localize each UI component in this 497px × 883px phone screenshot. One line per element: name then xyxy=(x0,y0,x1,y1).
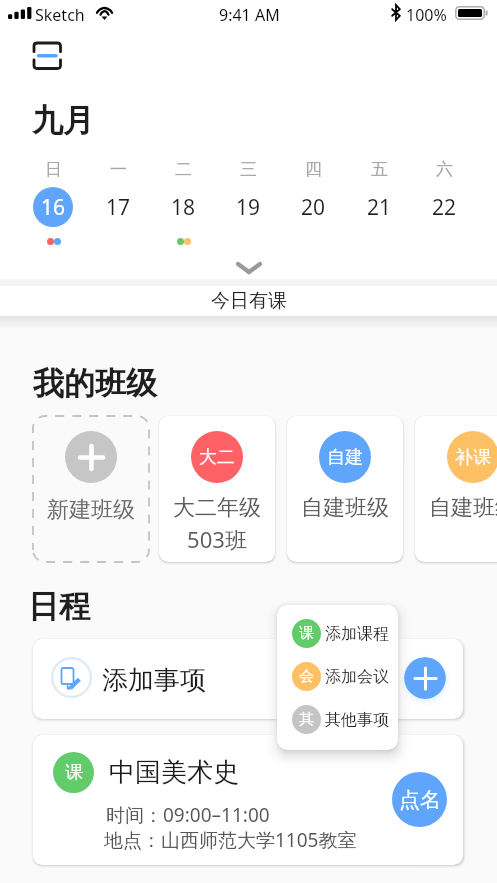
button[interactable]: 大二 xyxy=(159,416,275,562)
button[interactable]: 课 xyxy=(33,735,463,865)
staticText: 21 xyxy=(367,193,392,222)
staticText: 19 xyxy=(236,193,261,222)
staticText: 添加会议 xyxy=(325,667,389,687)
button[interactable]: 18 xyxy=(163,187,203,227)
button[interactable]: 19 xyxy=(228,187,268,227)
staticText: 课 xyxy=(65,761,83,784)
staticText: 100% xyxy=(406,4,447,26)
button[interactable]: 20 xyxy=(293,187,333,227)
button[interactable]: 17 xyxy=(98,187,138,227)
staticText: 20 xyxy=(301,193,326,222)
staticText: 大二年级 503班 xyxy=(173,494,261,555)
staticText: 添加课程 xyxy=(325,624,389,644)
staticText: 17 xyxy=(106,193,131,222)
staticText: 22 xyxy=(432,193,457,222)
button[interactable]: 添加 xyxy=(404,657,446,699)
staticText: 四 xyxy=(305,159,322,180)
staticText: 补课 xyxy=(455,446,491,469)
staticText: 点名 xyxy=(399,787,441,813)
button[interactable]: 自建 xyxy=(287,416,403,562)
button[interactable]: 22 xyxy=(424,187,464,227)
staticText: 日程 xyxy=(28,587,90,626)
staticText: 课 xyxy=(299,624,314,643)
staticText: 添加事项 xyxy=(102,664,206,697)
staticText: 日 xyxy=(45,159,62,180)
staticText: 大二 xyxy=(199,446,235,469)
staticText: 16 xyxy=(41,193,66,222)
button[interactable]: 其 xyxy=(292,705,398,734)
staticText: Sketch xyxy=(35,4,85,26)
staticText: 一 xyxy=(110,159,127,180)
button[interactable]: 课 xyxy=(292,619,398,648)
staticText: 二 xyxy=(175,159,192,180)
button[interactable]: 切换视图 xyxy=(33,42,61,69)
button[interactable]: 新建班级 xyxy=(33,416,149,562)
staticText: 中国美术史 xyxy=(109,756,239,789)
staticText: 今日有课 xyxy=(211,289,287,313)
button[interactable]: 16 xyxy=(33,187,73,227)
staticText: 自建班级 xyxy=(429,494,497,522)
button[interactable]: 补课 xyxy=(415,416,497,562)
staticText: 会 xyxy=(299,667,314,686)
button[interactable]: 点名 xyxy=(392,772,447,827)
staticText: 9:41 AM xyxy=(219,4,280,26)
staticText: 时间：09:00–11:00 xyxy=(106,802,270,828)
button[interactable]: 添加事项 xyxy=(33,639,463,719)
staticText: 我的班级 xyxy=(33,364,157,403)
staticText: 自建 xyxy=(327,446,363,469)
staticText: 三 xyxy=(240,159,257,180)
staticText: 其他事项 xyxy=(325,710,389,730)
staticText: 九月 xyxy=(32,101,94,140)
button[interactable]: 今日有课 xyxy=(0,286,497,316)
button[interactable]: 会 xyxy=(292,662,398,691)
staticText: 新建班级 xyxy=(47,496,135,524)
staticText: 18 xyxy=(171,193,196,222)
staticText: 五 xyxy=(371,159,388,180)
staticText: 自建班级 xyxy=(301,494,389,522)
button[interactable]: 21 xyxy=(359,187,399,227)
button[interactable]: 展开日历 xyxy=(220,255,278,281)
staticText: 地点：山西师范大学1105教室 xyxy=(104,827,357,853)
staticText: 六 xyxy=(436,159,453,180)
staticText: 其 xyxy=(299,710,314,729)
